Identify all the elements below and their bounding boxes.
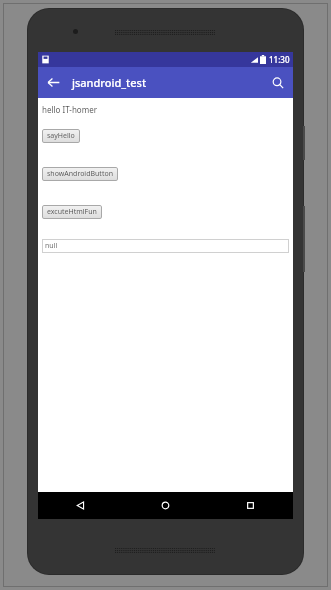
button[interactable]: Back [38, 67, 69, 98]
staticText: 11:30 [269, 54, 290, 65]
staticText: jsandroid_test [72, 75, 147, 90]
button[interactable]: null [42, 239, 289, 253]
staticText: hello IT-homer [42, 104, 97, 115]
button[interactable]: Search [262, 67, 293, 98]
button[interactable]: Back [38, 492, 123, 519]
staticText: showAndroidButton [47, 169, 113, 179]
button[interactable]: Home [123, 492, 208, 519]
staticText: null [45, 241, 58, 251]
staticText: excuteHtmlFun [47, 207, 97, 217]
button[interactable]: sayHello [42, 129, 80, 143]
button[interactable]: showAndroidButton [42, 167, 118, 181]
staticText: sayHello [47, 131, 75, 141]
button[interactable]: excuteHtmlFun [42, 205, 102, 219]
button[interactable]: Recents [208, 492, 293, 519]
